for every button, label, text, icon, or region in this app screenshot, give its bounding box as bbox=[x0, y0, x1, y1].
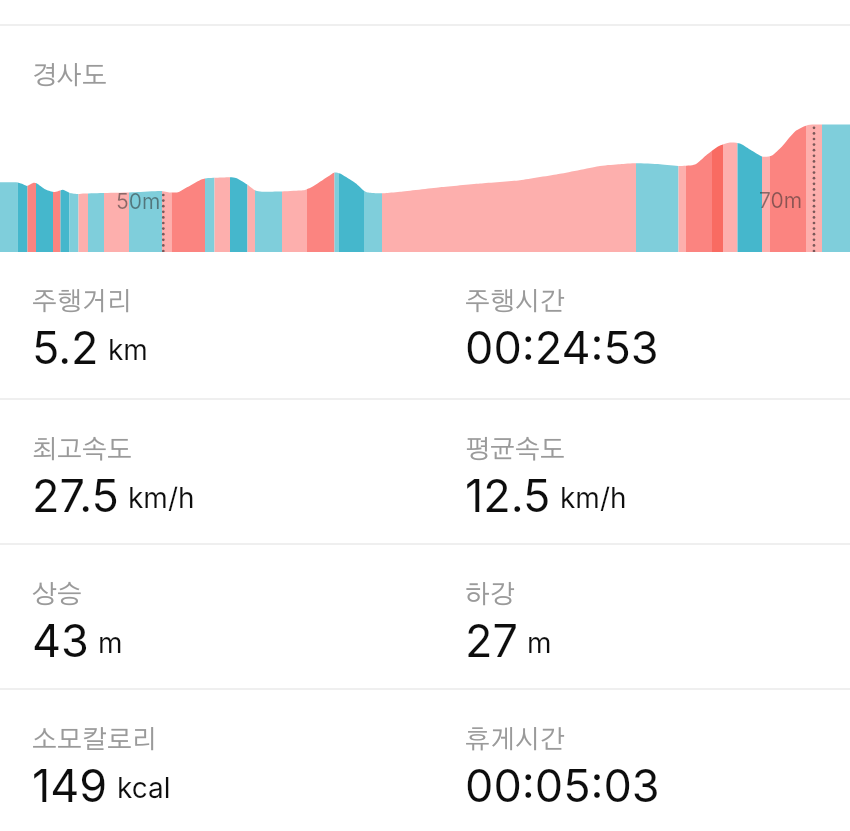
staticText: km bbox=[108, 333, 148, 367]
staticText: 주행시간 bbox=[465, 289, 565, 315]
button[interactable]: 주행거리 bbox=[0, 252, 433, 398]
staticText: 소모칼로리 bbox=[32, 727, 157, 753]
staticText: 경사도 bbox=[32, 63, 107, 89]
button[interactable]: 하강 bbox=[433, 545, 850, 688]
staticText: 43 bbox=[32, 613, 89, 667]
staticText: 휴게시간 bbox=[465, 727, 565, 753]
button[interactable]: 평균속도 bbox=[433, 400, 850, 543]
staticText: 상승 bbox=[32, 582, 82, 608]
button[interactable]: 소모칼로리 bbox=[0, 690, 433, 831]
staticText: 00:05:03 bbox=[465, 758, 660, 812]
staticText: 27 bbox=[465, 613, 518, 667]
staticText: kcal bbox=[117, 771, 171, 805]
staticText: 12.5 bbox=[465, 468, 551, 522]
staticText: km/h bbox=[128, 481, 195, 515]
staticText: 70m bbox=[759, 188, 803, 213]
staticText: 주행거리 bbox=[32, 289, 132, 315]
staticText: 27.5 bbox=[32, 468, 119, 522]
button[interactable]: 최고속도 bbox=[0, 400, 433, 543]
staticText: 00:24:53 bbox=[465, 320, 659, 374]
button[interactable]: 휴게시간 bbox=[433, 690, 850, 831]
button[interactable]: 상승 bbox=[0, 545, 433, 688]
staticText: 50m bbox=[116, 189, 161, 214]
staticText: 평균속도 bbox=[465, 437, 565, 463]
staticText: 최고속도 bbox=[32, 437, 132, 463]
staticText: m bbox=[98, 626, 123, 660]
staticText: m bbox=[527, 626, 552, 660]
staticText: 149 bbox=[32, 758, 108, 812]
staticText: km/h bbox=[560, 481, 627, 515]
button[interactable]: 주행시간 bbox=[433, 252, 850, 398]
staticText: 5.2 bbox=[32, 320, 99, 374]
staticText: 하강 bbox=[465, 582, 515, 608]
